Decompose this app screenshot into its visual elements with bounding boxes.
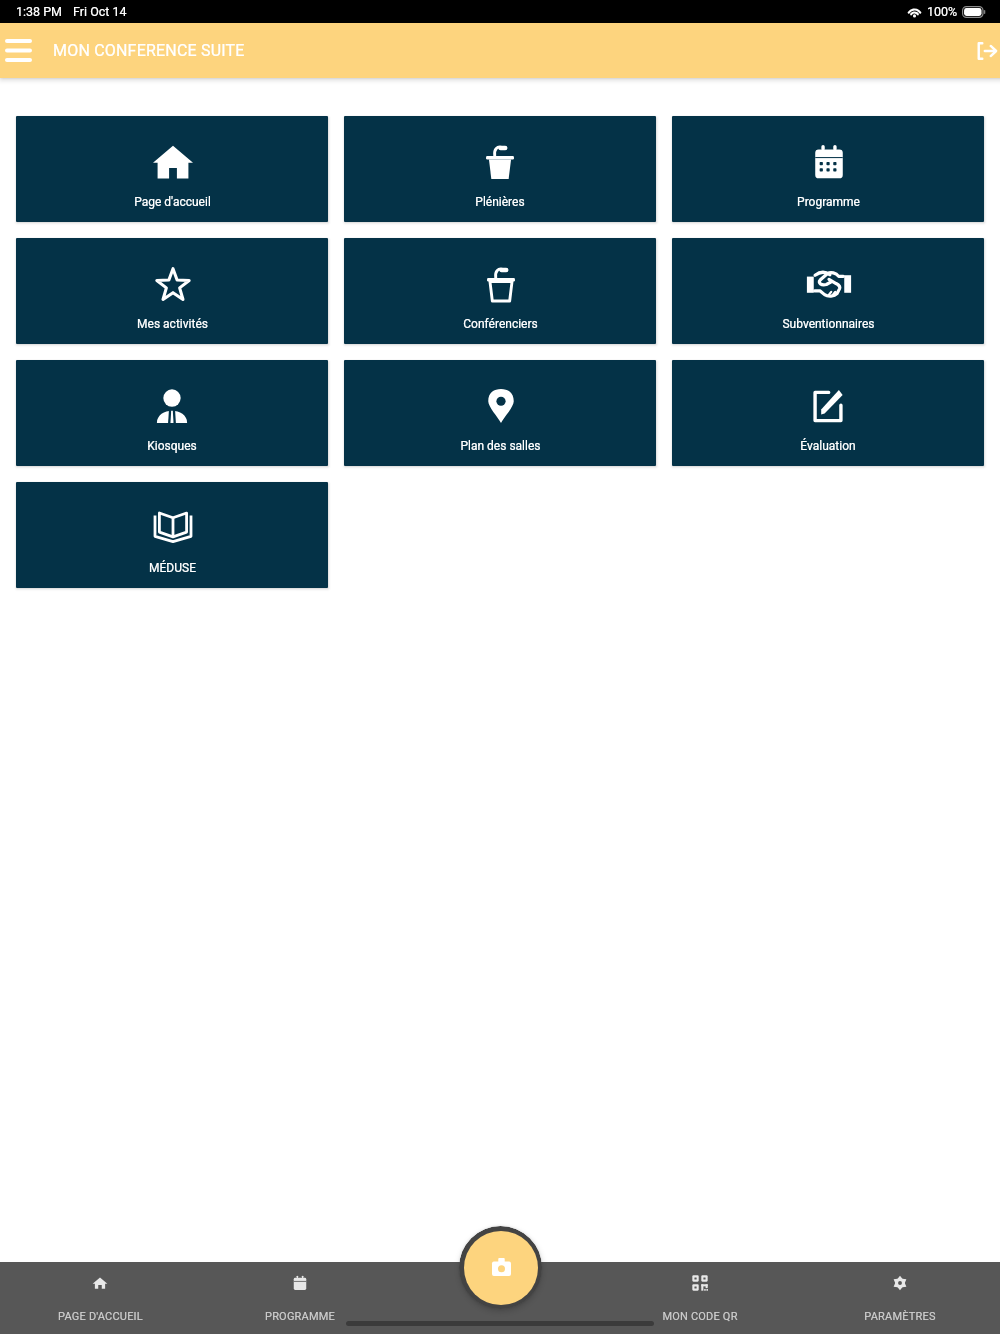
button[interactable]: Camera — [459, 1226, 542, 1309]
staticText: MÉDUSE — [149, 561, 196, 575]
staticText: PROGRAMME — [265, 1310, 335, 1323]
button[interactable]: Logout — [956, 23, 1000, 78]
staticText: Mes activités — [137, 317, 208, 331]
button[interactable]: Conférenciers — [344, 238, 656, 344]
button[interactable]: Kiosques — [16, 360, 328, 466]
button[interactable]: Plan des salles — [344, 360, 656, 466]
button[interactable]: Subventionnaires — [672, 238, 984, 344]
button[interactable]: MON CODE QR — [600, 1262, 800, 1334]
button[interactable]: Menu — [0, 23, 37, 78]
button[interactable]: Évaluation — [672, 360, 984, 466]
staticText: Page d'accueil — [134, 195, 211, 209]
button[interactable]: MÉDUSE — [16, 482, 328, 588]
staticText: Conférenciers — [463, 317, 538, 331]
button[interactable]: Mes activités — [16, 238, 328, 344]
staticText: Plénières — [475, 195, 525, 209]
button[interactable]: Programme — [672, 116, 984, 222]
staticText: PAGE D'ACCUEIL — [58, 1310, 143, 1323]
staticText: Fri Oct 14 — [73, 4, 127, 19]
button[interactable]: PAGE D'ACCUEIL — [0, 1262, 200, 1334]
staticText: PARAMÈTRES — [864, 1310, 936, 1323]
button[interactable]: Page d'accueil — [16, 116, 328, 222]
button[interactable]: PROGRAMME — [200, 1262, 400, 1334]
staticText: Plan des salles — [460, 439, 541, 453]
button[interactable]: Plénières — [344, 116, 656, 222]
staticText: 100% — [927, 4, 958, 19]
staticText: Évaluation — [800, 439, 856, 453]
staticText: MON CODE QR — [662, 1310, 738, 1323]
staticText: 1:38 PM — [16, 4, 63, 19]
staticText: Kiosques — [147, 439, 197, 453]
staticText: MON CONFERENCE SUITE — [53, 41, 245, 60]
button[interactable]: PARAMÈTRES — [800, 1262, 1000, 1334]
staticText: Subventionnaires — [782, 317, 875, 331]
staticText: Programme — [797, 195, 860, 209]
